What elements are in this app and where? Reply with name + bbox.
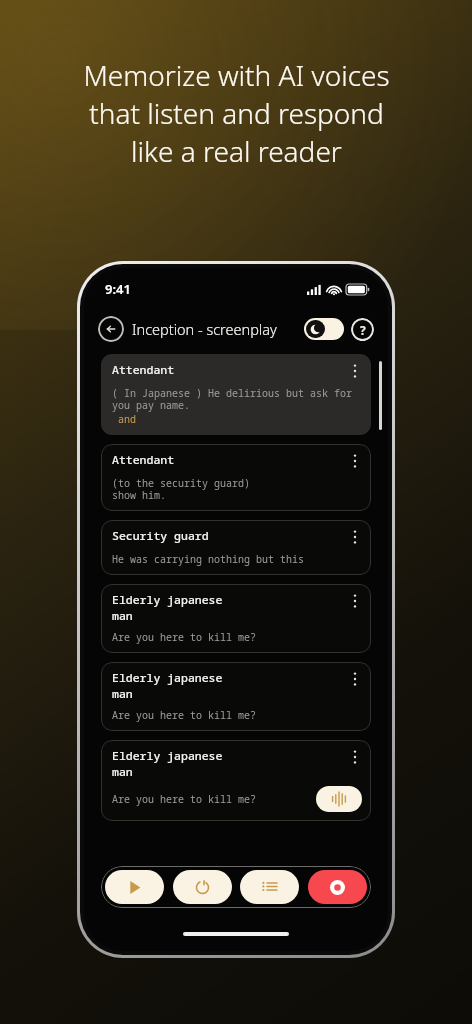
staticText: Are you here to kill me? <box>112 708 256 722</box>
staticText: and <box>112 412 136 426</box>
button[interactable]: More options <box>348 748 362 766</box>
staticText: Inception - screenplay <box>132 319 304 339</box>
button[interactable]: More options <box>348 528 362 546</box>
button[interactable]: More options <box>348 670 362 688</box>
staticText: man <box>112 686 133 702</box>
button[interactable]: More options <box>348 362 362 380</box>
button[interactable]: Repeat <box>173 870 232 904</box>
staticText: Attendant <box>112 452 175 468</box>
staticText: Attendant <box>112 362 175 378</box>
button[interactable]: Elderly japanese <box>101 740 371 821</box>
button[interactable]: List <box>240 870 299 904</box>
button[interactable]: Elderly japanese <box>101 662 371 731</box>
button[interactable]: Attendant <box>101 354 371 435</box>
button[interactable]: Play voice <box>316 786 362 812</box>
staticText: Memorize with AI voices that listen and … <box>83 56 390 170</box>
button[interactable]: Play <box>105 870 164 904</box>
staticText: ( In Japanese ) He delirious but ask for… <box>112 386 352 412</box>
staticText: Elderly japanese <box>112 592 223 608</box>
staticText: Are you here to kill me? <box>112 630 256 644</box>
staticText: Elderly japanese <box>112 748 223 764</box>
button[interactable]: Help <box>351 318 374 341</box>
button[interactable]: Security guard <box>101 520 371 575</box>
staticText: ? <box>360 322 366 338</box>
button[interactable]: Back <box>98 316 124 342</box>
staticText: He was carrying nothing but this <box>112 552 304 566</box>
staticText: (to the security guard) show him. <box>112 476 250 502</box>
button[interactable]: Elderly japanese <box>101 584 371 653</box>
staticText: Are you here to kill me? <box>112 792 256 806</box>
staticText: man <box>112 608 133 624</box>
button[interactable]: Attendant <box>101 444 371 511</box>
staticText: Elderly japanese <box>112 670 223 686</box>
button[interactable]: More options <box>348 452 362 470</box>
staticText: 9:41 <box>105 280 131 298</box>
button[interactable]: Dark mode toggle <box>304 318 344 340</box>
staticText: Security guard <box>112 528 209 544</box>
button[interactable]: Record <box>308 870 367 904</box>
staticText: man <box>112 764 133 780</box>
button[interactable]: More options <box>348 592 362 610</box>
